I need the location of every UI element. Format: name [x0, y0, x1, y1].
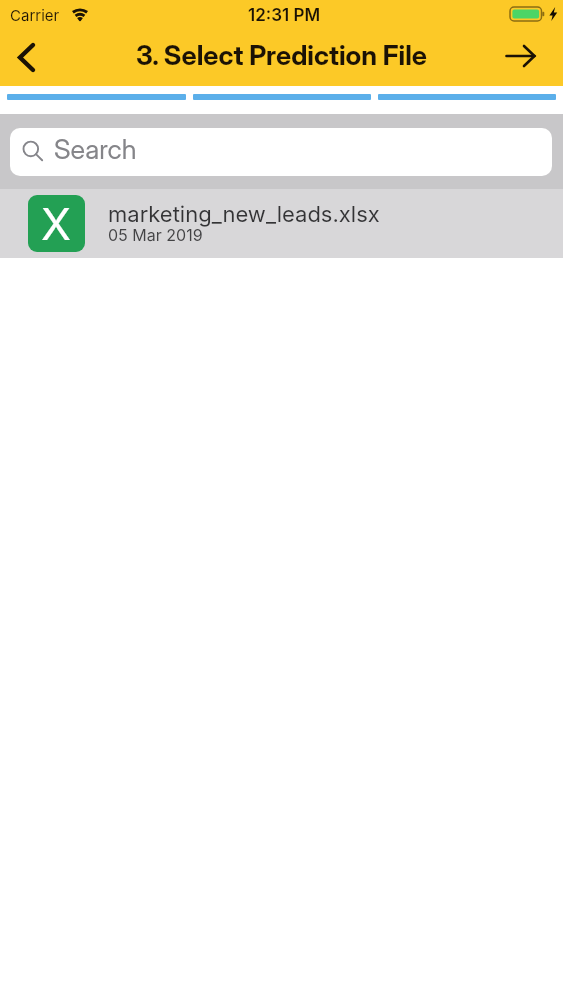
- button[interactable]: Back: [0, 30, 52, 85]
- staticText: marketing_new_leads.xlsx: [108, 201, 380, 228]
- staticText: 12:31 PM: [248, 5, 321, 26]
- staticText: 3. Select Prediction File: [136, 39, 427, 72]
- staticText: Search: [54, 133, 137, 166]
- button[interactable]: X: [0, 189, 563, 258]
- button[interactable]: Next: [478, 30, 563, 85]
- staticText: 05 Mar 2019: [108, 225, 203, 244]
- staticText: X: [41, 197, 72, 250]
- button[interactable]: Search: [10, 128, 552, 176]
- staticText: Carrier: [10, 6, 60, 24]
